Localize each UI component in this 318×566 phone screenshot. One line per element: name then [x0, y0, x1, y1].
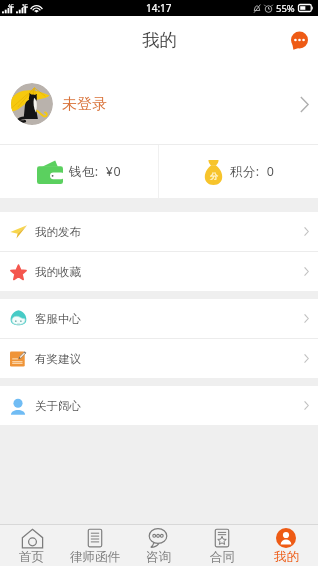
- staticText: 积分: 0: [230, 163, 275, 180]
- staticText: 咨询: [146, 549, 171, 565]
- staticText: 首页: [19, 549, 44, 565]
- staticText: 分: [210, 171, 218, 181]
- staticText: 律师函件: [70, 549, 120, 565]
- staticText: 14:17: [146, 1, 172, 15]
- staticText: 未登录: [62, 95, 107, 114]
- button[interactable]: 我的: [254, 525, 318, 566]
- button[interactable]: 钱包: ¥0: [0, 145, 158, 198]
- staticText: 我的: [274, 549, 299, 565]
- button[interactable]: 有奖建议: [0, 339, 318, 378]
- staticText: 3G: [22, 3, 28, 9]
- button[interactable]: Messages: [284, 25, 314, 55]
- staticText: 合同: [210, 549, 235, 565]
- button[interactable]: 律师函件: [63, 525, 126, 566]
- staticText: 关于阔心: [35, 399, 81, 413]
- staticText: 客服中心: [35, 312, 81, 326]
- staticText: 我的: [142, 29, 177, 51]
- button[interactable]: 我的收藏: [0, 252, 318, 291]
- button[interactable]: 合同: [190, 525, 254, 566]
- button[interactable]: 首页: [0, 525, 63, 566]
- button[interactable]: 关于阔心: [0, 386, 318, 425]
- staticText: 55%: [276, 2, 295, 15]
- button[interactable]: 分: [159, 145, 318, 198]
- button[interactable]: 未登录: [0, 64, 318, 144]
- staticText: 我的收藏: [35, 265, 81, 279]
- staticText: 我的发布: [35, 225, 81, 239]
- button[interactable]: 我的发布: [0, 212, 318, 251]
- staticText: 钱包: ¥0: [69, 163, 121, 180]
- button[interactable]: 咨询: [126, 525, 190, 566]
- staticText: 有奖建议: [35, 352, 81, 366]
- staticText: 4G: [8, 3, 14, 9]
- button[interactable]: 客服中心: [0, 299, 318, 338]
